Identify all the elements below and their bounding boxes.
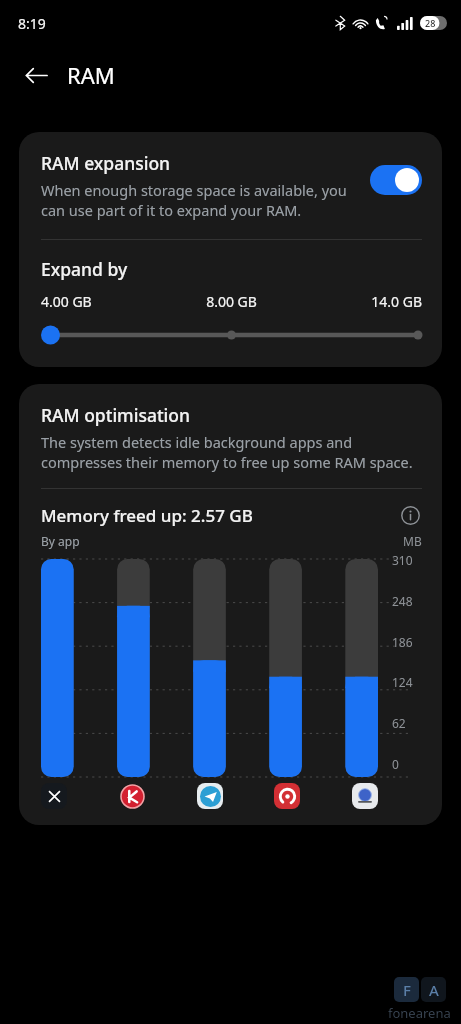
staticText: When enough storage space is available, … [41,180,360,221]
button[interactable]: Back [14,53,58,97]
staticText: Expand by [41,257,128,281]
staticText: RAM optimisation [41,403,191,427]
button[interactable]: Telegram [197,783,223,809]
staticText: 186 [392,634,413,648]
staticText: A [429,980,439,1000]
staticText: 248 [392,593,413,607]
staticText: RAM expansion [41,151,171,175]
staticText: 124 [392,674,413,688]
button[interactable]: Pocket Casts [274,783,300,809]
button[interactable]: App [352,783,378,809]
staticText: 14.0 GB [295,292,422,311]
staticText: 4.00 GB [41,292,168,311]
staticText: MB [403,533,422,549]
staticText: 8:19 [18,14,46,33]
button[interactable]: X app [41,783,67,809]
button[interactable]: Expand by slider [41,323,422,347]
staticText: 62 [392,715,406,729]
staticText: RAM [67,60,115,90]
button[interactable]: RAM expansion toggle [370,165,422,195]
staticText: By app [41,533,403,549]
staticText: 28 [425,17,436,29]
button[interactable]: App [119,783,145,809]
staticText: F [403,980,411,1000]
button[interactable]: Information [398,503,422,527]
staticText: The system detects idle background apps … [41,432,422,473]
button[interactable]: Memory freed up: 2.57 GB [41,503,422,527]
staticText: 0 [392,756,399,770]
staticText: fonearena [388,1004,451,1022]
staticText: 310 [392,552,413,566]
staticText: Memory freed up: 2.57 GB [41,504,398,527]
staticText: 8.00 GB [168,292,295,311]
